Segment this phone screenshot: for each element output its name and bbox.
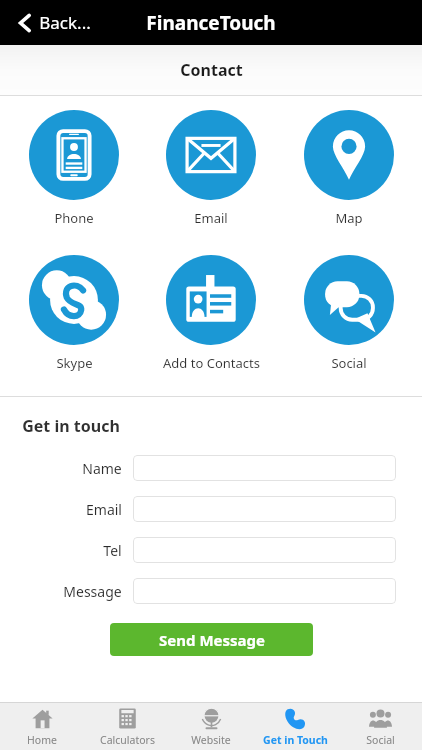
staticText: Social bbox=[366, 733, 395, 747]
staticText: Message bbox=[63, 582, 122, 601]
staticText: Contact bbox=[180, 59, 243, 81]
button[interactable]: Name field bbox=[133, 455, 396, 481]
staticText: Website bbox=[191, 733, 231, 747]
staticText: Get in touch bbox=[22, 415, 120, 437]
staticText: Email bbox=[194, 209, 228, 227]
other: Email bbox=[166, 110, 256, 200]
button[interactable]: Message field bbox=[133, 578, 396, 604]
staticText: Name bbox=[82, 459, 122, 478]
button[interactable]: Home bbox=[0, 707, 84, 747]
button[interactable]: Social bbox=[338, 707, 422, 747]
staticText: Social bbox=[331, 354, 367, 372]
staticText: Home bbox=[27, 733, 57, 747]
staticText: Phone bbox=[54, 209, 94, 227]
staticText: Get in Touch bbox=[263, 733, 328, 747]
button[interactable]: Back... bbox=[14, 7, 95, 38]
staticText: Tel bbox=[103, 541, 122, 560]
button[interactable]: Email bbox=[147, 110, 275, 227]
button[interactable]: Send Message bbox=[110, 623, 313, 656]
button[interactable]: Calculators bbox=[85, 707, 169, 747]
staticText: Calculators bbox=[100, 733, 155, 747]
other: Social bbox=[304, 255, 394, 345]
staticText: Map bbox=[335, 209, 363, 227]
staticText: FinanceTouch bbox=[146, 10, 276, 36]
other: Phone bbox=[29, 110, 119, 200]
staticText: Email bbox=[86, 500, 122, 519]
button[interactable]: Phone bbox=[10, 110, 138, 227]
staticText: Send Message bbox=[159, 630, 265, 650]
other: Map bbox=[304, 110, 394, 200]
staticText: Add to Contacts bbox=[163, 354, 260, 372]
button[interactable]: Skype bbox=[10, 255, 138, 372]
button[interactable]: Social bbox=[285, 255, 413, 372]
button[interactable]: Tel field bbox=[133, 537, 396, 563]
button[interactable]: Get in Touch bbox=[253, 707, 337, 747]
staticText: Skype bbox=[56, 354, 93, 372]
button[interactable]: Email field bbox=[133, 496, 396, 522]
other: Add to Contacts bbox=[166, 255, 256, 345]
button[interactable]: Website bbox=[169, 707, 253, 747]
staticText: Back... bbox=[39, 11, 91, 34]
other: Skype bbox=[29, 255, 119, 345]
button[interactable]: Add to Contacts bbox=[147, 255, 275, 372]
button[interactable]: Map bbox=[285, 110, 413, 227]
